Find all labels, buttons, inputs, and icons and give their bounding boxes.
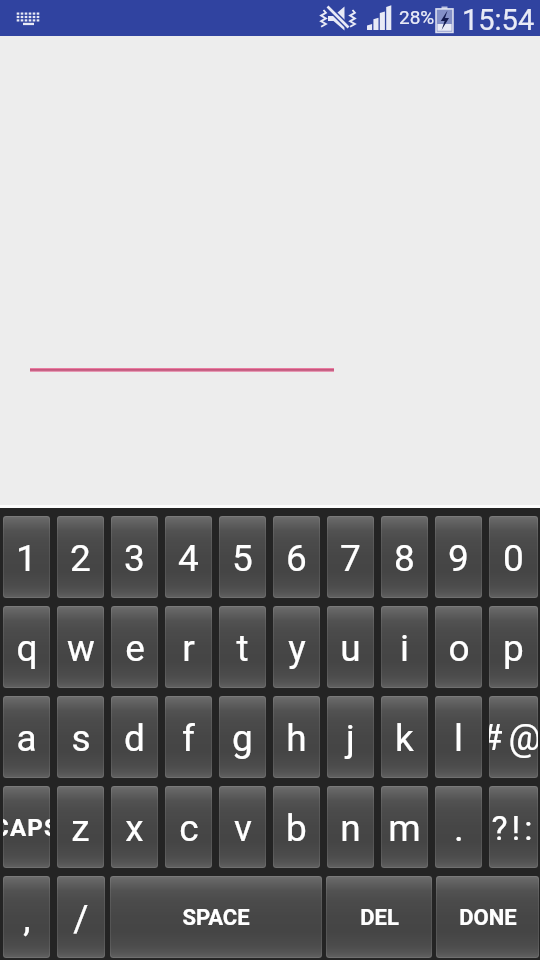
button[interactable]: q bbox=[3, 606, 50, 688]
button[interactable]: e bbox=[111, 606, 158, 688]
button[interactable]: j bbox=[327, 696, 374, 778]
button[interactable]: DONE bbox=[436, 876, 539, 958]
staticText: b bbox=[286, 807, 307, 850]
staticText: g bbox=[232, 717, 253, 760]
button[interactable]: z bbox=[57, 786, 104, 868]
staticText: 1 bbox=[16, 537, 37, 580]
staticText: l bbox=[454, 717, 463, 760]
staticText: 2 bbox=[70, 537, 91, 580]
button[interactable]: SPACE bbox=[110, 876, 322, 958]
button[interactable]: 5 bbox=[219, 516, 266, 598]
staticText: 3 bbox=[124, 537, 145, 580]
button[interactable]: 7 bbox=[327, 516, 374, 598]
staticText: m bbox=[388, 807, 421, 850]
staticText: o bbox=[448, 627, 470, 670]
button[interactable]: p bbox=[489, 606, 538, 688]
button[interactable]: Battery 28 percent, charging bbox=[434, 0, 456, 36]
button[interactable]: i bbox=[381, 606, 428, 688]
button[interactable]: r bbox=[165, 606, 212, 688]
staticText: d bbox=[124, 717, 145, 760]
staticText: u bbox=[340, 627, 361, 670]
staticText: i bbox=[400, 627, 409, 670]
button[interactable]: 3 bbox=[111, 516, 158, 598]
staticText: q bbox=[16, 627, 38, 670]
button[interactable]: CAPS bbox=[3, 786, 50, 868]
button[interactable]: . bbox=[435, 786, 482, 868]
staticText: f bbox=[182, 717, 195, 760]
staticText: 0 bbox=[503, 537, 524, 580]
button[interactable]: 4 bbox=[165, 516, 212, 598]
button[interactable]: f bbox=[165, 696, 212, 778]
staticText: p bbox=[503, 627, 524, 670]
staticText: 15:54 bbox=[462, 3, 535, 37]
staticText: h bbox=[286, 717, 307, 760]
button[interactable]: Text field bbox=[30, 326, 334, 372]
button[interactable]: 9 bbox=[435, 516, 482, 598]
button[interactable]: 2 bbox=[57, 516, 104, 598]
button[interactable]: DEL bbox=[326, 876, 432, 958]
staticText: 8 bbox=[394, 537, 415, 580]
button[interactable]: h bbox=[273, 696, 320, 778]
staticText: a bbox=[16, 717, 37, 760]
staticText: w bbox=[67, 627, 95, 670]
staticText: DONE bbox=[459, 905, 517, 931]
button[interactable]: 6 bbox=[273, 516, 320, 598]
button[interactable]: , bbox=[3, 876, 50, 958]
button[interactable]: Sound off, vibrate bbox=[318, 0, 358, 36]
button[interactable]: 8 bbox=[381, 516, 428, 598]
button[interactable]: Change keyboard bbox=[12, 0, 44, 36]
staticText: r bbox=[182, 627, 195, 670]
button[interactable]: a bbox=[3, 696, 50, 778]
button[interactable]: k bbox=[381, 696, 428, 778]
button[interactable]: m bbox=[381, 786, 428, 868]
button[interactable]: s bbox=[57, 696, 104, 778]
button[interactable]: t bbox=[219, 606, 266, 688]
button[interactable]: y bbox=[273, 606, 320, 688]
staticText: 5 bbox=[232, 537, 253, 580]
staticText: #@ bbox=[489, 717, 538, 759]
button[interactable]: 0 bbox=[489, 516, 538, 598]
staticText: s bbox=[71, 717, 91, 760]
button[interactable]: l bbox=[435, 696, 482, 778]
staticText: 4 bbox=[178, 537, 199, 580]
button[interactable]: ?!: bbox=[489, 786, 538, 868]
button[interactable]: n bbox=[327, 786, 374, 868]
staticText: n bbox=[340, 807, 361, 850]
staticText: CAPS bbox=[3, 814, 50, 842]
button[interactable]: u bbox=[327, 606, 374, 688]
button[interactable]: #@ bbox=[489, 696, 538, 778]
staticText: j bbox=[346, 717, 355, 760]
staticText: v bbox=[234, 807, 252, 850]
staticText: DEL bbox=[360, 905, 399, 931]
staticText: . bbox=[454, 807, 464, 850]
button[interactable]: c bbox=[165, 786, 212, 868]
button[interactable]: Mobile signal bbox=[364, 0, 394, 36]
staticText: 9 bbox=[448, 537, 469, 580]
staticText: , bbox=[23, 897, 31, 940]
staticText: SPACE bbox=[182, 905, 250, 931]
button[interactable]: x bbox=[111, 786, 158, 868]
staticText: k bbox=[395, 717, 414, 760]
button[interactable]: v bbox=[219, 786, 266, 868]
staticText: 7 bbox=[340, 537, 361, 580]
button[interactable]: d bbox=[111, 696, 158, 778]
staticText: ?!: bbox=[491, 808, 537, 848]
staticText: / bbox=[73, 897, 89, 940]
button[interactable]: o bbox=[435, 606, 482, 688]
staticText: e bbox=[125, 627, 145, 670]
staticText: x bbox=[125, 807, 144, 850]
button[interactable]: w bbox=[57, 606, 104, 688]
staticText: t bbox=[236, 627, 249, 670]
staticText: 6 bbox=[286, 537, 307, 580]
staticText: 28% bbox=[399, 6, 435, 28]
button[interactable]: b bbox=[273, 786, 320, 868]
staticText: y bbox=[288, 627, 306, 670]
button[interactable]: g bbox=[219, 696, 266, 778]
staticText: c bbox=[179, 807, 199, 850]
button[interactable]: 1 bbox=[3, 516, 50, 598]
staticText: z bbox=[71, 807, 90, 850]
button[interactable]: / bbox=[57, 876, 105, 958]
